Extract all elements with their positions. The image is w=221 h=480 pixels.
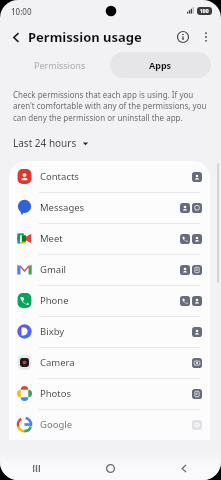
staticText: Apps xyxy=(149,59,172,71)
button[interactable]: Permissions xyxy=(10,52,110,78)
button[interactable]: Apps xyxy=(110,52,211,78)
button[interactable]: Information xyxy=(171,25,195,49)
staticText: Phone xyxy=(40,294,69,307)
button[interactable]: Google xyxy=(9,409,210,440)
button[interactable]: Home xyxy=(73,456,147,480)
staticText: Contacts xyxy=(40,170,79,183)
button[interactable]: Bixby xyxy=(9,316,210,347)
button[interactable]: Back xyxy=(4,25,28,49)
staticText: Permissions xyxy=(34,59,86,71)
staticText: Photos xyxy=(40,387,72,400)
staticText: Camera xyxy=(40,356,75,369)
button[interactable]: More options xyxy=(195,26,217,48)
button[interactable]: Photos xyxy=(9,378,210,409)
staticText: Last 24 hours xyxy=(13,136,77,150)
staticText: Permission usage xyxy=(28,28,142,46)
button[interactable]: Messages xyxy=(9,192,210,223)
staticText: Meet xyxy=(40,232,63,245)
button[interactable]: Camera xyxy=(9,347,210,378)
button[interactable]: Gmail xyxy=(9,254,210,285)
staticText: Gmail xyxy=(40,263,67,276)
button[interactable]: Meet xyxy=(9,223,210,254)
button[interactable]: Back xyxy=(147,456,221,480)
button[interactable]: Recent apps xyxy=(0,456,73,480)
button[interactable]: Phone xyxy=(9,285,210,316)
staticText: 100 xyxy=(200,8,209,15)
button[interactable]: Last 24 hours xyxy=(13,136,89,150)
staticText: Messages xyxy=(40,201,85,214)
button[interactable]: Contacts xyxy=(9,161,210,192)
staticText: Bixby xyxy=(40,325,65,338)
staticText: Google xyxy=(40,418,73,431)
staticText: 10:00 xyxy=(11,6,32,17)
staticText: Check permissions that each app is using… xyxy=(13,89,208,124)
